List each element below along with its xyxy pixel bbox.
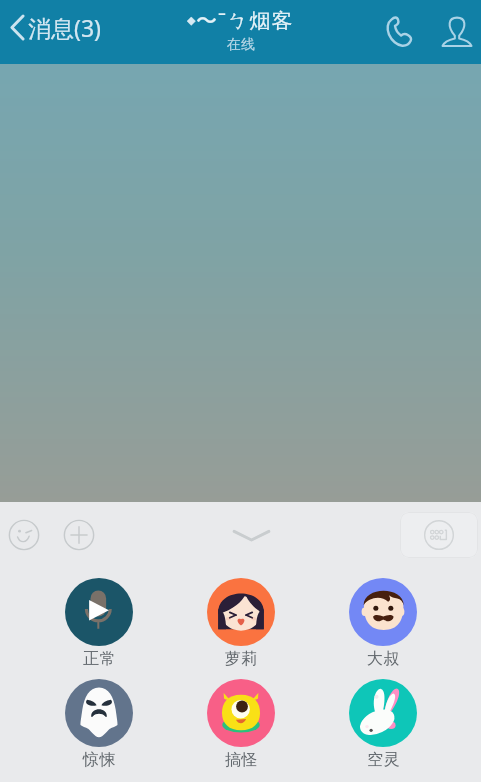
staticText: ◆ (187, 14, 196, 27)
button[interactable]: 消息(3) (0, 0, 111, 59)
button[interactable]: 萝莉 (170, 574, 312, 669)
button[interactable]: Call (376, 9, 422, 55)
button[interactable]: Collapse panel (225, 515, 277, 555)
button[interactable]: 大叔 (312, 574, 454, 669)
button[interactable]: 惊悚 (28, 675, 170, 770)
staticText: 萝莉 (225, 649, 258, 669)
staticText: 空灵 (367, 750, 400, 770)
staticText: 大叔 (367, 649, 400, 669)
staticText: 〜ˉㄅ烟客 (196, 6, 294, 35)
button[interactable]: 搞怪 (170, 675, 312, 770)
button[interactable]: Keyboard (400, 512, 478, 558)
staticText: 正常 (83, 649, 116, 669)
staticText: 在线 (227, 36, 255, 54)
staticText: 惊悚 (83, 750, 116, 770)
staticText: 搞怪 (225, 750, 258, 770)
button[interactable]: Emoji (8, 519, 40, 551)
staticText: 消息(3) (28, 12, 101, 43)
button[interactable]: 空灵 (312, 675, 454, 770)
button[interactable]: 正常 (28, 574, 170, 669)
button[interactable]: Contact profile (434, 9, 480, 55)
button[interactable]: Add attachment (63, 519, 95, 551)
